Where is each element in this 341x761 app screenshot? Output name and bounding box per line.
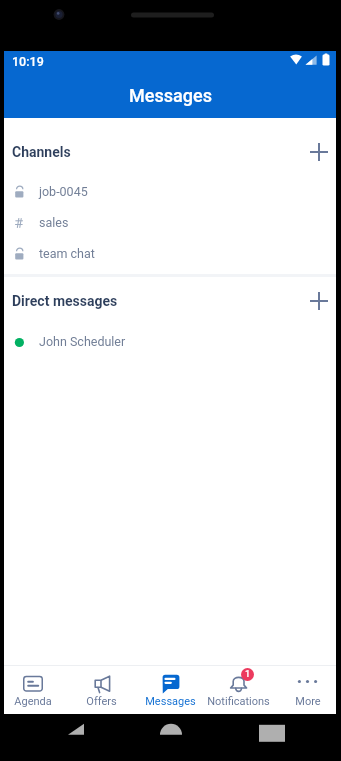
button[interactable]: John Scheduler <box>4 326 336 357</box>
button[interactable]: job-0045 <box>4 176 336 207</box>
button[interactable]: 1 <box>210 666 267 714</box>
button[interactable]: More <box>279 666 336 714</box>
staticText: job-0045 <box>39 184 88 199</box>
button[interactable]: sales <box>4 207 336 238</box>
staticText: sales <box>39 215 69 230</box>
staticText: Direct messages <box>12 293 118 309</box>
staticText: Channels <box>12 144 71 160</box>
button[interactable]: Messages <box>142 666 199 714</box>
staticText: Agenda <box>14 695 52 708</box>
button[interactable]: Offers <box>73 666 130 714</box>
staticText: Offers <box>86 695 117 708</box>
staticText: John Scheduler <box>39 334 126 349</box>
button[interactable]: Agenda <box>4 666 61 714</box>
staticText: 1 <box>245 669 251 680</box>
staticText: More <box>295 695 321 708</box>
staticText: 10:19 <box>12 54 44 69</box>
staticText: Messages <box>129 85 212 106</box>
staticText: Notifications <box>207 695 270 708</box>
staticText: team chat <box>39 246 95 261</box>
button[interactable]: Add Direct messages <box>302 284 336 318</box>
staticText: Messages <box>145 695 196 708</box>
button[interactable]: Add Channels <box>302 135 336 169</box>
button[interactable]: team chat <box>4 238 336 269</box>
